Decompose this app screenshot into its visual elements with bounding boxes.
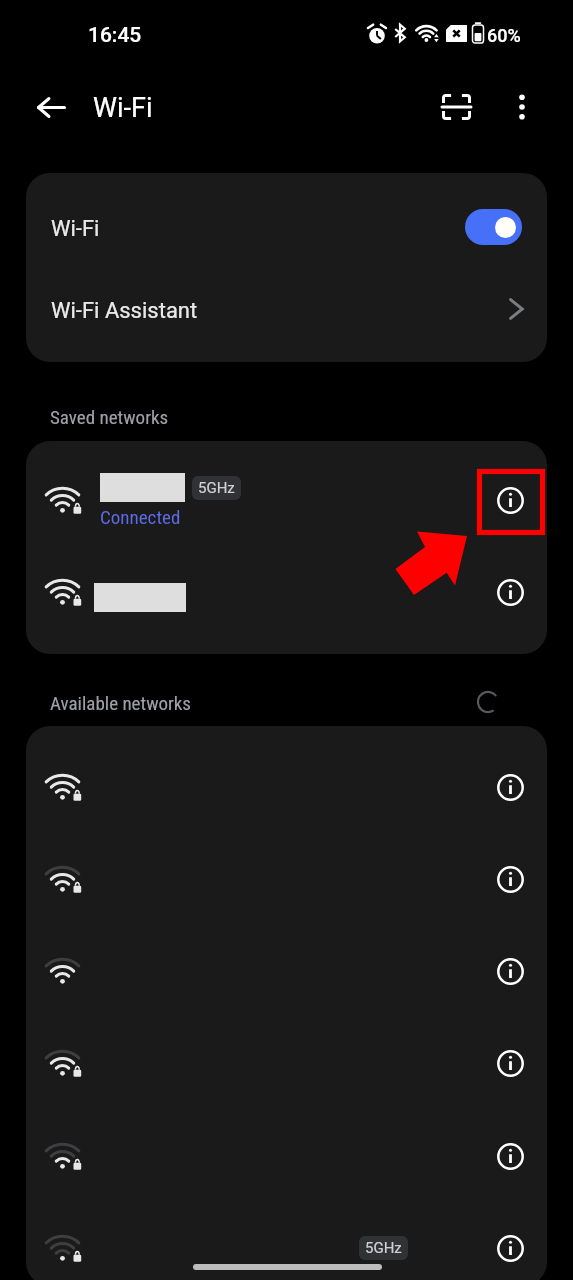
staticText: Available networks — [50, 692, 192, 714]
button[interactable]: Network details — [26, 833, 547, 925]
staticText: 5GHz — [198, 479, 235, 497]
button[interactable]: Network details — [26, 741, 547, 833]
button[interactable]: Scan QR code — [432, 83, 480, 131]
staticText: Wi-Fi Assistant — [51, 298, 198, 324]
button[interactable]: Network details — [26, 925, 547, 1017]
button[interactable]: Network details — [487, 1133, 533, 1179]
button[interactable]: Network details — [487, 1040, 533, 1086]
button[interactable]: 5GHz — [26, 448, 547, 552]
button[interactable]: Network details — [487, 1225, 533, 1271]
button[interactable]: Network details — [487, 569, 533, 615]
button[interactable]: Network details — [26, 550, 547, 634]
staticText: Saved networks — [50, 406, 169, 428]
button[interactable]: Network details — [487, 477, 533, 523]
staticText: Wi-Fi — [93, 92, 153, 124]
staticText: Wi-Fi — [51, 216, 100, 242]
button[interactable]: More options — [498, 83, 546, 131]
button[interactable]: Network details — [26, 1017, 547, 1109]
staticText: 5GHz — [365, 1239, 402, 1257]
staticText: Connected — [100, 506, 181, 528]
button[interactable]: Network details — [26, 1110, 547, 1202]
button[interactable]: Back — [27, 83, 75, 131]
button[interactable]: Network details — [487, 856, 533, 902]
staticText: 60% — [487, 25, 521, 46]
button[interactable]: 5GHz — [26, 1202, 547, 1280]
staticText: 16:45 — [88, 23, 142, 48]
button[interactable]: Network details — [487, 948, 533, 994]
button[interactable]: Wi-Fi Assistant — [26, 268, 547, 350]
button[interactable]: Wi-Fi on — [465, 209, 522, 245]
button[interactable]: Network details — [487, 764, 533, 810]
button[interactable]: Wi-Fi — [26, 186, 547, 268]
